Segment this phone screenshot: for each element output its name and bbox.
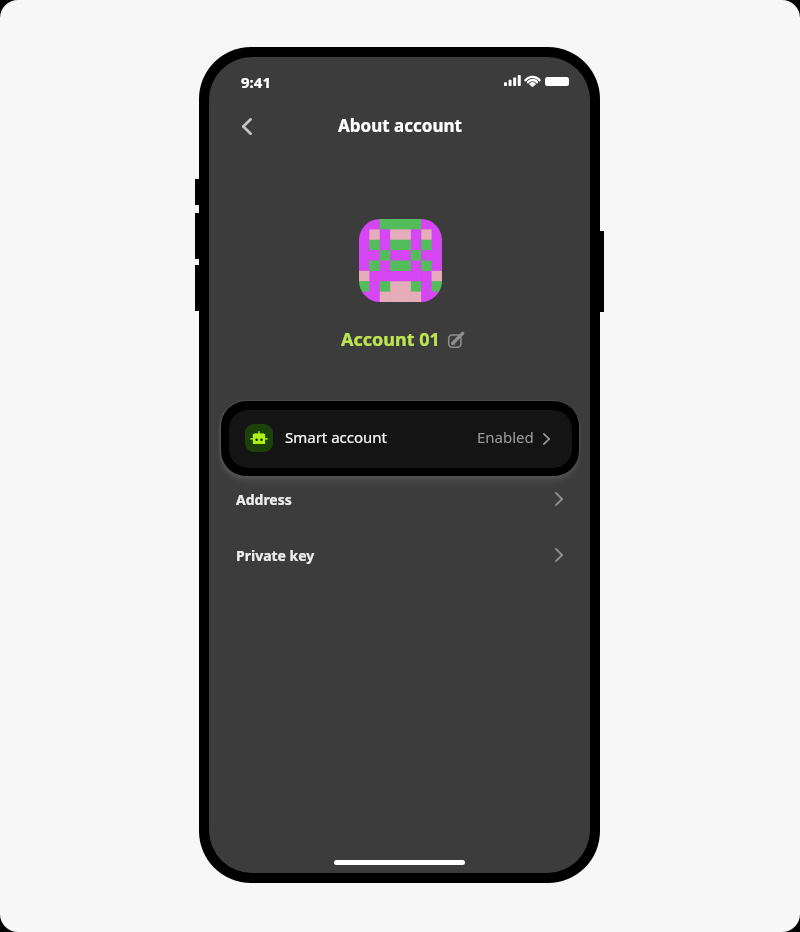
staticText: Account 01 [341,327,440,352]
staticText: About account [338,114,462,137]
staticText: Smart account [285,427,388,447]
button[interactable]: Edit account name [445,330,465,350]
staticText: Enabled [477,427,534,447]
staticText: Private key [236,546,315,565]
button[interactable]: Address [209,471,590,527]
staticText: Address [236,490,292,509]
button[interactable]: Private key [209,527,590,583]
staticText: 9:41 [241,72,271,92]
button[interactable]: Smart account [221,401,579,476]
button[interactable]: Back [227,106,267,146]
